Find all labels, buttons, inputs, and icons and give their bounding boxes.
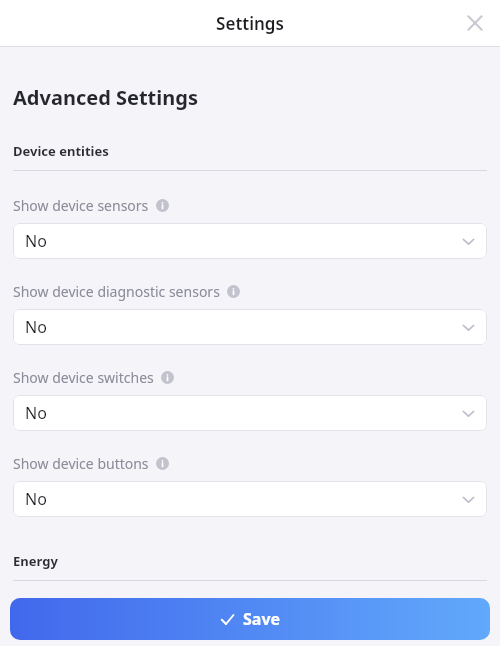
staticText: Device entities: [13, 142, 109, 160]
button[interactable]: No: [13, 309, 487, 345]
staticText: Show device buttons: [13, 454, 149, 473]
staticText: No: [25, 488, 47, 510]
button[interactable]: No: [13, 395, 487, 431]
staticText: Advanced Settings: [13, 84, 198, 111]
staticText: No: [25, 230, 47, 252]
button[interactable]: No: [13, 223, 487, 259]
button[interactable]: Save: [10, 598, 490, 640]
staticText: Show device diagnostic sensors: [13, 282, 220, 301]
staticText: No: [25, 316, 47, 338]
button[interactable]: No: [13, 481, 487, 517]
button[interactable]: Close: [458, 6, 492, 40]
staticText: Show device switches: [13, 368, 154, 387]
staticText: Save: [243, 608, 281, 630]
staticText: No: [25, 402, 47, 424]
staticText: Settings: [0, 12, 500, 35]
staticText: Show device sensors: [13, 196, 149, 215]
staticText: Energy: [13, 552, 58, 570]
